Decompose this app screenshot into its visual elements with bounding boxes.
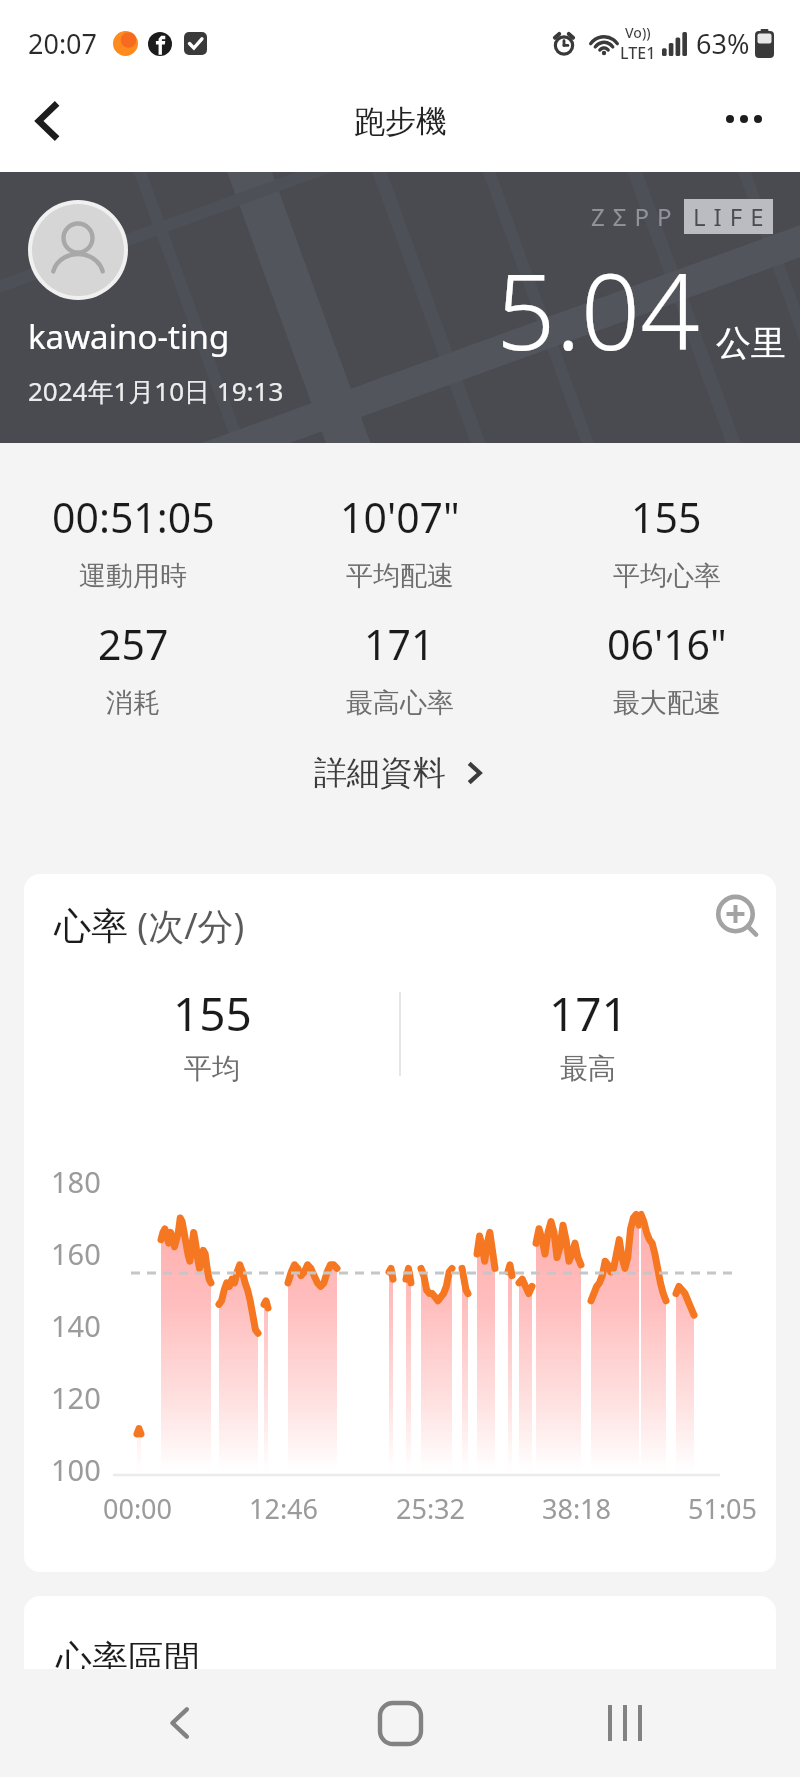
staticText: 171 [549,982,628,1045]
button[interactable]: Zoom in chart [709,888,767,946]
staticText: 120 [51,1378,101,1417]
staticText: 平均 [184,1051,240,1086]
staticText: 最高 [560,1051,616,1086]
staticText: 5.04 [496,239,700,381]
staticText: 最高心率 [346,686,454,720]
staticText: 160 [51,1234,101,1273]
staticText: 跑步機 [354,102,447,141]
staticText: LTE1 [620,42,656,64]
staticText: LIFE [693,200,772,233]
staticText: 心率區間 [56,1636,200,1681]
staticText: 最大配速 [613,686,721,720]
staticText: 100 [51,1450,101,1489]
staticText: 心率 [54,903,128,950]
staticText: 171 [364,616,435,672]
staticText: 38:18 [542,1490,612,1527]
button[interactable]: 詳細資料 [0,746,800,800]
staticText: 63% [696,25,750,62]
staticText: 25:32 [396,1490,466,1527]
button[interactable]: Back [120,1669,240,1777]
staticText: 詳細資料 [314,752,446,794]
staticText: 2024年1月10日 19:13 [28,373,284,409]
staticText: 51:05 [688,1490,758,1527]
staticText: 消耗 [106,686,160,720]
staticText: 12:46 [249,1490,319,1527]
button[interactable]: Home [340,1669,460,1777]
staticText: 平均心率 [613,559,721,593]
staticText: 10'07" [340,489,460,545]
staticText: 平均配速 [346,559,454,593]
staticText: 公里 [716,321,786,365]
staticText: kawaino-ting [28,314,230,359]
staticText: 00:00 [103,1490,173,1527]
button[interactable]: Back [14,87,82,155]
staticText: 運動用時 [79,559,187,593]
button[interactable]: More options [710,85,778,153]
staticText: 257 [98,616,169,672]
staticText: 00:51:05 [52,489,215,545]
staticText: 20:07 [28,25,98,62]
staticText: Vo)) [625,23,651,42]
button[interactable]: Recent apps [565,1669,685,1777]
staticText: (次/分) [128,901,245,950]
staticText: 180 [51,1162,101,1201]
staticText: 155 [173,982,252,1045]
staticText: ΖΣPP [591,200,680,233]
staticText: 140 [51,1306,101,1345]
staticText: 155 [631,489,702,545]
staticText: 06'16" [607,616,727,672]
